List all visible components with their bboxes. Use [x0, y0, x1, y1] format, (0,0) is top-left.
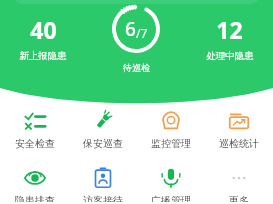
staticText: 安全检查 [15, 137, 55, 150]
button[interactable]: 更多 [205, 165, 273, 204]
staticText: 40 [30, 14, 57, 45]
button[interactable]: 12 [186, 14, 273, 62]
staticText: 6 [125, 16, 136, 42]
button[interactable]: 访客接待 [69, 165, 137, 204]
staticText: 处理中隐患 [206, 50, 254, 62]
staticText: 监控管理 [151, 137, 191, 150]
button[interactable]: 隐患排查 [0, 165, 69, 204]
button[interactable]: 待巡检进度 [109, 2, 163, 56]
staticText: 保安巡查 [83, 137, 123, 150]
button[interactable]: 安全检查 [0, 108, 69, 152]
button[interactable]: 40 [0, 14, 86, 62]
staticText: 广播管理 [151, 194, 191, 202]
button[interactable]: 广播管理 [137, 165, 205, 204]
staticText: 待巡检 [123, 62, 150, 73]
button[interactable]: 保安巡查 [69, 108, 137, 152]
staticText: 12 [216, 14, 243, 45]
button[interactable]: 监控管理 [137, 108, 205, 152]
staticText: /7 [136, 25, 148, 41]
button[interactable]: 巡检统计 [205, 108, 273, 152]
staticText: 巡检统计 [219, 137, 259, 150]
staticText: 访客接待 [83, 194, 123, 202]
staticText: 隐患排查 [15, 194, 55, 202]
staticText: 更多 [229, 194, 249, 202]
staticText: 新上报隐患 [19, 50, 67, 62]
